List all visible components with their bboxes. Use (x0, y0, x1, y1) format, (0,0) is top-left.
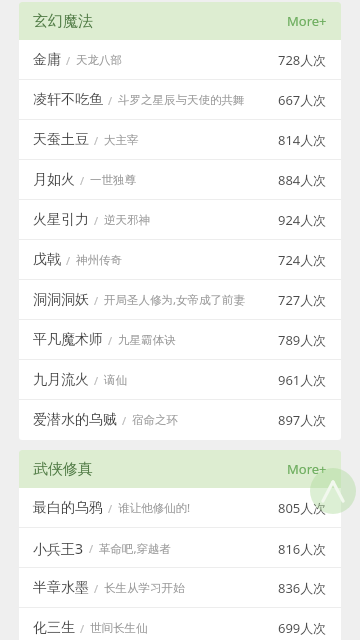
button[interactable]: 戊戟 (19, 240, 341, 280)
staticText: 洞洞洞妖 (33, 291, 89, 309)
staticText: 667人次 (278, 91, 327, 109)
button[interactable]: 洞洞洞妖 (19, 280, 341, 320)
button[interactable]: 月如火 (19, 160, 341, 200)
staticText: 816人次 (278, 540, 327, 558)
staticText: More+ (287, 12, 327, 30)
staticText: / (122, 413, 127, 428)
staticText: 728人次 (278, 51, 327, 69)
staticText: 世间长生仙 (90, 621, 148, 635)
staticText: 一世独尊 (90, 173, 136, 187)
staticText: 789人次 (278, 331, 327, 349)
button[interactable]: 化三生 (19, 608, 341, 640)
staticText: 九星霸体诀 (118, 333, 176, 347)
staticText: 836人次 (278, 579, 327, 597)
staticText: 斗罗之星辰与天使的共舞 (118, 93, 245, 107)
staticText: 神州传奇 (76, 253, 122, 267)
staticText: / (94, 373, 99, 388)
staticText: 金庸 (33, 51, 61, 69)
button[interactable]: 平凡魔术师 (19, 320, 341, 360)
staticText: 最白的乌鸦 (33, 499, 103, 517)
staticText: More+ (287, 460, 327, 478)
staticText: / (94, 133, 99, 148)
button[interactable]: 凌轩不吃鱼 (19, 80, 341, 120)
staticText: 宿命之环 (132, 413, 178, 427)
staticText: / (66, 53, 71, 68)
staticText: 月如火 (33, 171, 75, 189)
staticText: / (66, 253, 71, 268)
staticText: 化三生 (33, 619, 75, 637)
button[interactable]: 小兵王З (19, 528, 341, 568)
staticText: 爱潜水的乌贼 (33, 411, 117, 429)
staticText: 小兵王З (33, 539, 84, 558)
staticText: 开局圣人修为,女帝成了前妻 (104, 292, 246, 308)
staticText: 天龙八部 (76, 53, 122, 67)
button[interactable]: More+ (273, 452, 341, 486)
staticText: 699人次 (278, 619, 327, 637)
button[interactable]: 金庸 (19, 40, 341, 80)
staticText: / (80, 173, 85, 188)
staticText: 戊戟 (33, 251, 61, 269)
staticText: 924人次 (278, 211, 327, 229)
button[interactable]: Scroll to top (310, 468, 356, 514)
staticText: / (94, 213, 99, 228)
staticText: / (80, 621, 85, 636)
staticText: / (108, 93, 113, 108)
staticText: 谁让他修仙的! (118, 500, 191, 516)
staticText: 961人次 (278, 371, 327, 389)
button[interactable]: 最白的乌鸦 (19, 488, 341, 528)
staticText: 半章水墨 (33, 579, 89, 597)
staticText: 805人次 (278, 499, 327, 517)
staticText: 逆天邪神 (104, 213, 150, 227)
staticText: 九月流火 (33, 371, 89, 389)
button[interactable]: 天蚕土豆 (19, 120, 341, 160)
staticText: 长生从学习开始 (104, 581, 185, 595)
staticText: 897人次 (278, 411, 327, 429)
staticText: 天蚕土豆 (33, 131, 89, 149)
staticText: 727人次 (278, 291, 327, 309)
button[interactable]: More+ (273, 4, 341, 38)
staticText: 平凡魔术师 (33, 331, 103, 349)
staticText: / (94, 581, 99, 596)
staticText: 火星引力 (33, 211, 89, 229)
staticText: 大主宰 (104, 133, 139, 147)
staticText: / (108, 501, 113, 516)
staticText: / (89, 541, 94, 556)
staticText: 谪仙 (104, 373, 127, 387)
staticText: / (94, 293, 99, 308)
staticText: / (108, 333, 113, 348)
staticText: 884人次 (278, 171, 327, 189)
button[interactable]: 九月流火 (19, 360, 341, 400)
staticText: 814人次 (278, 131, 327, 149)
button[interactable]: 火星引力 (19, 200, 341, 240)
staticText: 玄幻魔法 (33, 12, 93, 31)
staticText: 革命吧,穿越者 (99, 541, 172, 557)
button[interactable]: 半章水墨 (19, 568, 341, 608)
staticText: 724人次 (278, 251, 327, 269)
staticText: 凌轩不吃鱼 (33, 91, 103, 109)
button[interactable]: 爱潜水的乌贼 (19, 400, 341, 440)
staticText: 武侠修真 (33, 460, 93, 479)
